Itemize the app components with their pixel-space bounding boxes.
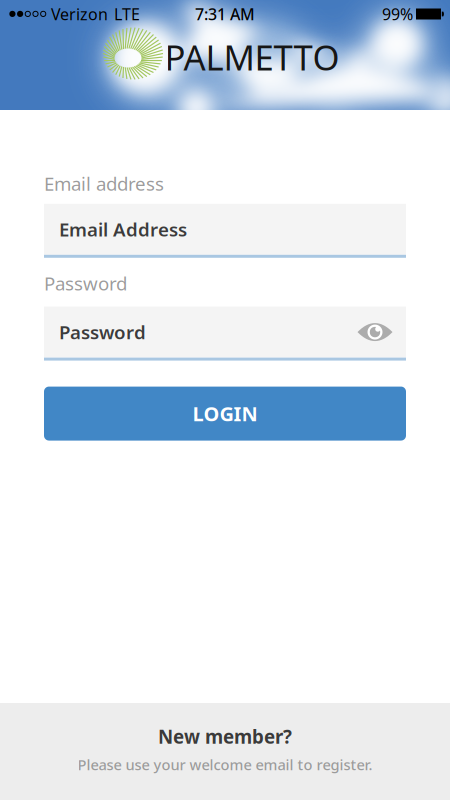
staticText: 7:31 AM xyxy=(195,3,255,25)
staticText: Password xyxy=(44,271,127,296)
button[interactable]: Password xyxy=(44,307,406,361)
staticText: Password xyxy=(59,320,146,344)
button[interactable]: New member? xyxy=(0,703,450,800)
staticText: PALMETTO xyxy=(164,34,339,80)
staticText: Verizon xyxy=(51,3,108,25)
button[interactable]: LOGIN xyxy=(44,387,406,441)
staticText: Please use your welcome email to registe… xyxy=(77,755,372,774)
staticText: Email Address xyxy=(59,217,187,242)
staticText: LOGIN xyxy=(192,400,257,427)
button[interactable]: Email Address xyxy=(44,204,406,258)
staticText: New member? xyxy=(158,724,292,749)
staticText: 99% xyxy=(382,3,413,25)
staticText: Email address xyxy=(44,171,164,196)
staticText: LTE xyxy=(114,3,140,25)
